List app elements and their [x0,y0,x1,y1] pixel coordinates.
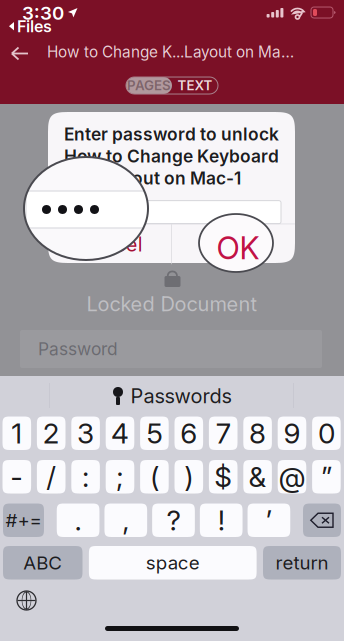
staticText: PAGES [127,77,171,93]
button[interactable]: ; [106,460,134,493]
staticText: @ [278,460,305,494]
button[interactable]: 8 [243,416,272,450]
staticText: Enter password to unlock [64,124,279,145]
staticText: ! [218,503,225,537]
staticText: 3 [77,416,94,450]
button[interactable]: $ [209,460,237,493]
button[interactable]: ABC [3,546,82,579]
staticText: 9 [283,416,300,450]
staticText: : [82,460,89,494]
button[interactable]: 4 [106,416,134,450]
staticText: 6 [180,416,197,450]
staticText: OK [219,232,248,256]
button[interactable]: ’ [248,503,290,537]
button[interactable]: 5 [140,416,169,450]
staticText: 0 [318,416,335,450]
staticText: / [46,460,56,494]
staticText: return [275,551,328,574]
staticText: Cancel [77,232,143,256]
staticText: $ [214,460,232,494]
staticText: 7 [216,416,231,450]
button[interactable]: ( [140,460,169,493]
staticText: . [75,503,82,537]
button[interactable]: ? [152,503,195,537]
button[interactable]: return [263,546,341,579]
staticText: Layout on Mac-1 [102,168,241,189]
staticText: TEXT [177,77,212,93]
button[interactable]: 6 [174,416,203,450]
button[interactable]: & [243,460,272,493]
staticText: ; [116,460,124,494]
staticText: Passwords [130,384,231,408]
staticText: Files [17,17,52,36]
staticText: ” [321,460,332,494]
staticText: & [249,460,267,494]
button[interactable]: / [37,460,65,493]
button[interactable]: Next keyboard [9,583,44,618]
button[interactable]: ) [174,460,203,493]
staticText: #+= [5,509,41,532]
staticText: 3:30 [22,2,64,24]
staticText: OK [216,229,259,266]
button[interactable]: PAGES [126,77,172,94]
button[interactable]: Delete [303,503,341,537]
button[interactable]: , [104,503,147,537]
button[interactable]: ! [200,503,243,537]
button[interactable]: Cancel [48,224,171,264]
button[interactable]: ” [312,460,341,493]
button[interactable]: 0 [312,416,341,450]
button[interactable]: @ [278,460,306,493]
button[interactable]: Passwords [0,376,344,416]
staticText: - [10,460,23,494]
button[interactable]: TEXT [172,77,218,94]
staticText: 5 [146,416,162,450]
button[interactable]: Back [0,38,40,70]
staticText: , [122,503,129,537]
button[interactable]: 3 [71,416,100,450]
button[interactable]: 2 [37,416,65,450]
staticText: 2 [43,416,60,450]
staticText: ( [150,460,159,494]
button[interactable]: #+= [3,503,44,537]
staticText: ? [166,503,180,537]
button[interactable]: space [89,546,257,579]
staticText: 8 [249,416,266,450]
staticText: 4 [111,416,129,450]
staticText: ’ [265,503,272,537]
staticText: Locked Document [86,292,257,316]
staticText: ABC [23,551,62,574]
button[interactable]: 9 [278,416,306,450]
button[interactable]: OK [172,224,295,264]
staticText: 1 [11,416,22,450]
staticText: space [146,551,200,574]
staticText: Password [38,338,118,359]
button[interactable]: 1 [2,416,31,450]
button[interactable]: - [2,460,31,493]
button[interactable]: 7 [209,416,237,450]
staticText: How to Change Keyboard [64,146,279,167]
button[interactable]: . [57,503,99,537]
staticText: ) [184,460,193,494]
staticText: How to Change K...Layout on Mac-1 [47,43,297,61]
button[interactable]: : [71,460,100,493]
